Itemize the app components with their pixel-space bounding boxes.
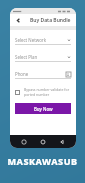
button[interactable]: Buy Now [15, 103, 71, 114]
button[interactable]: Select Network [15, 36, 71, 45]
staticText: Select Plan [15, 54, 38, 60]
staticText: Bypass number validate for [24, 87, 70, 92]
staticText: ported number [24, 92, 50, 97]
staticText: Buy Data Bundle [30, 17, 71, 24]
button[interactable]: Back [14, 16, 22, 24]
button[interactable]: Recents [19, 137, 29, 147]
staticText: MASKAWASUB [0, 155, 85, 167]
button[interactable]: Phone [15, 70, 71, 79]
button[interactable]: Bypass number validate for [15, 87, 71, 97]
staticText: Buy Now [34, 106, 53, 112]
button[interactable]: Pick contact [66, 72, 71, 77]
button[interactable]: Select Plan [15, 53, 71, 62]
button[interactable]: Back [57, 137, 67, 147]
button[interactable]: Home [38, 137, 48, 147]
staticText: Select Network [15, 37, 46, 43]
staticText: Phone [15, 71, 29, 77]
